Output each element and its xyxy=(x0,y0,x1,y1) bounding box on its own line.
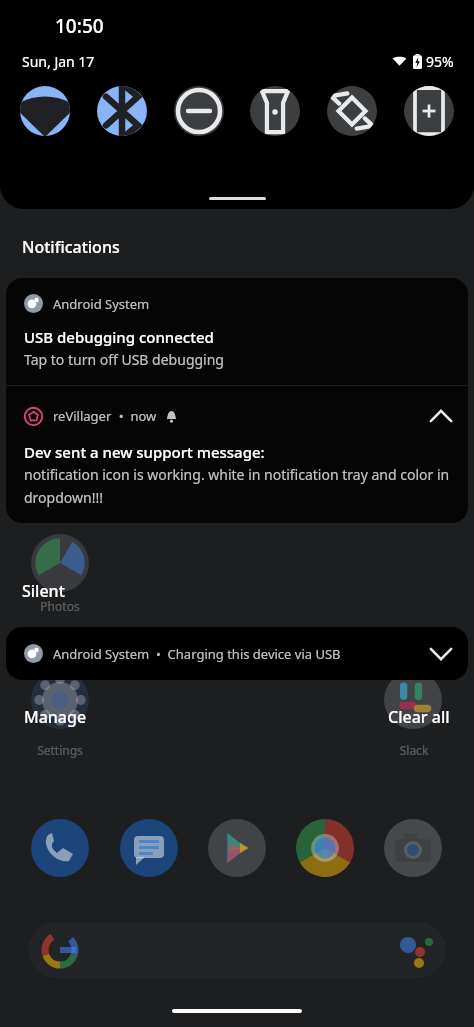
staticText: USB debugging connected xyxy=(24,327,214,347)
button[interactable]: Do Not Disturb xyxy=(174,86,224,136)
staticText: • now xyxy=(112,407,157,425)
staticText: 95% xyxy=(426,52,454,71)
button[interactable]: Flashlight xyxy=(250,86,300,136)
button[interactable]: reVillager xyxy=(6,386,468,523)
staticText: Clear all xyxy=(388,706,450,728)
button[interactable]: Manage xyxy=(22,702,89,732)
staticText: notification icon is working. white in n… xyxy=(24,465,450,507)
button[interactable]: Collapse xyxy=(424,399,458,433)
staticText: Tap to turn off USB debugging xyxy=(24,350,224,369)
staticText: Slack xyxy=(376,742,452,758)
staticText: Sun, Jan 17 xyxy=(22,52,95,71)
staticText: Dev sent a new support message: xyxy=(24,442,265,462)
button[interactable]: Clear all xyxy=(386,702,452,732)
staticText: Android System xyxy=(53,295,150,313)
staticText: reVillager xyxy=(53,407,112,425)
staticText: Settings xyxy=(22,742,98,758)
button[interactable]: Wi-Fi xyxy=(20,86,70,136)
staticText: Android System • Charging this device vi… xyxy=(53,645,341,663)
button[interactable]: Bluetooth xyxy=(97,86,147,136)
button[interactable]: Android System xyxy=(6,278,468,385)
button[interactable]: Android System • Charging this device vi… xyxy=(6,627,468,680)
staticText: 10:50 xyxy=(55,13,104,39)
staticText: Photos xyxy=(22,598,98,614)
button[interactable]: Expand xyxy=(424,637,458,671)
button[interactable]: Battery Saver xyxy=(404,86,454,136)
staticText: Notifications xyxy=(22,236,120,258)
staticText: Silent xyxy=(22,580,65,602)
button[interactable]: Auto-rotate xyxy=(327,86,377,136)
staticText: Manage xyxy=(24,706,87,728)
